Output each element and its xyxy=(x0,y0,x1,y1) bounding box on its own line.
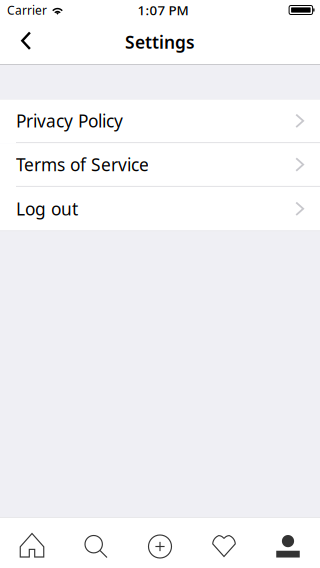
button[interactable]: Terms of Service xyxy=(0,143,320,187)
button[interactable]: Back xyxy=(0,20,46,64)
staticText: Log out xyxy=(16,197,78,220)
staticText: Carrier xyxy=(7,2,47,18)
staticText: Privacy Policy xyxy=(16,109,123,132)
button[interactable]: Profile xyxy=(256,518,320,568)
button[interactable]: Privacy Policy xyxy=(0,99,320,143)
button[interactable]: New post xyxy=(128,518,192,568)
staticText: Terms of Service xyxy=(16,153,149,176)
staticText: Settings xyxy=(125,30,195,53)
button[interactable]: Log out xyxy=(0,187,320,231)
staticText: 1:07 PM xyxy=(137,1,188,19)
button[interactable]: Search xyxy=(64,518,128,568)
button[interactable]: Home xyxy=(0,518,64,568)
button[interactable]: Activity xyxy=(192,518,256,568)
